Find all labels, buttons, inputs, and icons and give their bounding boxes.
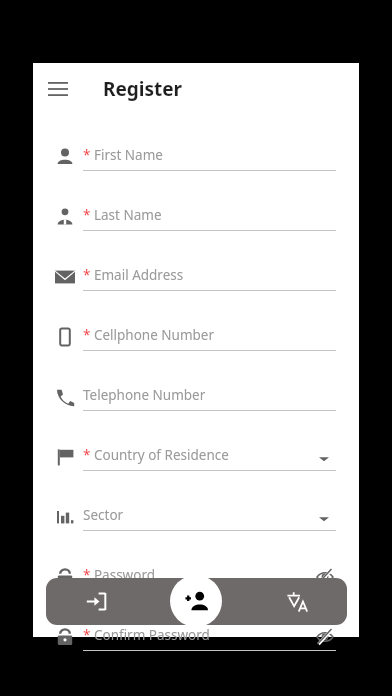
staticText: * Country of Residence <box>83 446 229 464</box>
button[interactable]: Menu <box>40 71 76 107</box>
button[interactable]: Login <box>46 578 147 625</box>
staticText: * Last Name <box>83 206 162 224</box>
button[interactable]: Sector <box>33 495 359 555</box>
button[interactable]: * Email Address <box>33 255 359 315</box>
staticText: Telephone Number <box>83 386 206 404</box>
button[interactable]: * Cellphone Number <box>33 315 359 375</box>
staticText: Register <box>103 76 183 102</box>
staticText: * First Name <box>83 146 163 164</box>
staticText: * Password <box>83 566 156 584</box>
button[interactable]: Change language <box>247 578 347 625</box>
button[interactable]: * Confirm Password <box>33 615 359 637</box>
staticText: * Email Address <box>83 266 184 284</box>
staticText: * Cellphone Number <box>83 326 215 344</box>
button[interactable]: Telephone Number <box>33 375 359 435</box>
button[interactable]: * Country of Residence <box>33 435 359 495</box>
button[interactable]: Register <box>170 575 222 627</box>
button[interactable]: * First Name <box>33 135 359 195</box>
staticText: * Confirm Password <box>83 626 210 644</box>
staticText: Sector <box>83 506 124 524</box>
button[interactable]: * Last Name <box>33 195 359 255</box>
button[interactable]: * Password <box>33 555 359 615</box>
